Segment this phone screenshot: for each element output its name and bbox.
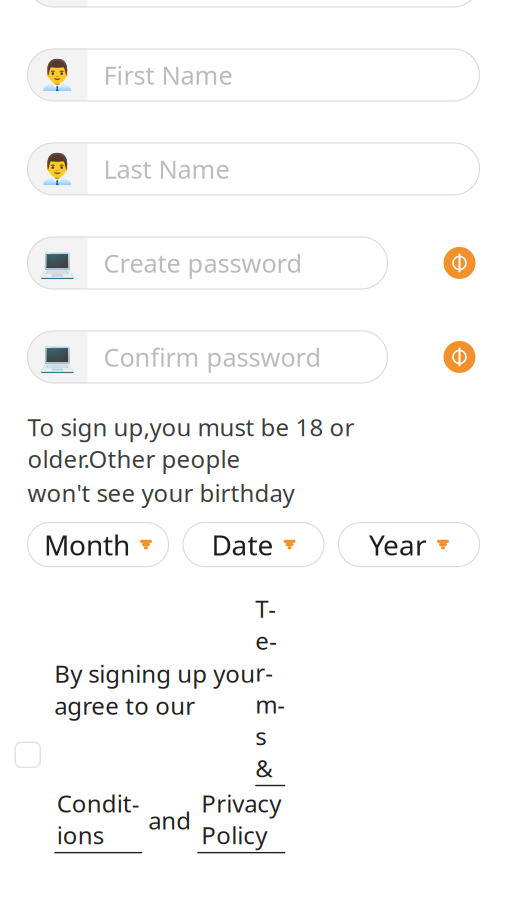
button[interactable]: ✉️ bbox=[27, 0, 479, 7]
button[interactable]: 👨‍💼 bbox=[27, 49, 479, 101]
button[interactable]: Month bbox=[27, 523, 168, 567]
button[interactable]: Agree to terms bbox=[15, 742, 54, 767]
staticText: 💻 bbox=[39, 340, 76, 374]
button[interactable]: 💻 bbox=[27, 237, 387, 289]
staticText: First Name bbox=[103, 58, 232, 92]
staticText: Conditions bbox=[57, 787, 140, 851]
staticText: To sign up,you must be 18 or older.Other… bbox=[27, 411, 354, 475]
staticText: Date bbox=[211, 526, 273, 563]
button[interactable]: 💻 bbox=[27, 331, 387, 383]
button[interactable]: Year bbox=[338, 523, 479, 567]
button[interactable]: Show password bbox=[439, 337, 479, 377]
button[interactable]: Date bbox=[183, 523, 324, 567]
staticText: won't see your birthday bbox=[27, 477, 294, 509]
staticText: By signing up you agree to our bbox=[54, 657, 255, 721]
staticText: 👨‍💼 bbox=[39, 58, 76, 92]
button[interactable]: Terms & bbox=[255, 593, 285, 786]
button[interactable]: Show password bbox=[439, 243, 479, 283]
staticText: Confirm password bbox=[103, 340, 321, 374]
staticText: and bbox=[142, 804, 197, 836]
staticText: Year bbox=[369, 526, 427, 563]
staticText: 💻 bbox=[39, 246, 76, 280]
staticText: Month bbox=[44, 526, 130, 563]
button[interactable]: Privacy Policy bbox=[197, 787, 285, 853]
staticText: 👨‍💼 bbox=[39, 152, 76, 186]
staticText: Last Name bbox=[103, 152, 229, 186]
staticText: Create password bbox=[103, 246, 302, 280]
staticText: Privacy Policy bbox=[201, 787, 281, 851]
staticText: Terms & bbox=[255, 593, 285, 784]
button[interactable]: Conditions bbox=[54, 787, 142, 853]
button[interactable]: 👨‍💼 bbox=[27, 143, 479, 195]
